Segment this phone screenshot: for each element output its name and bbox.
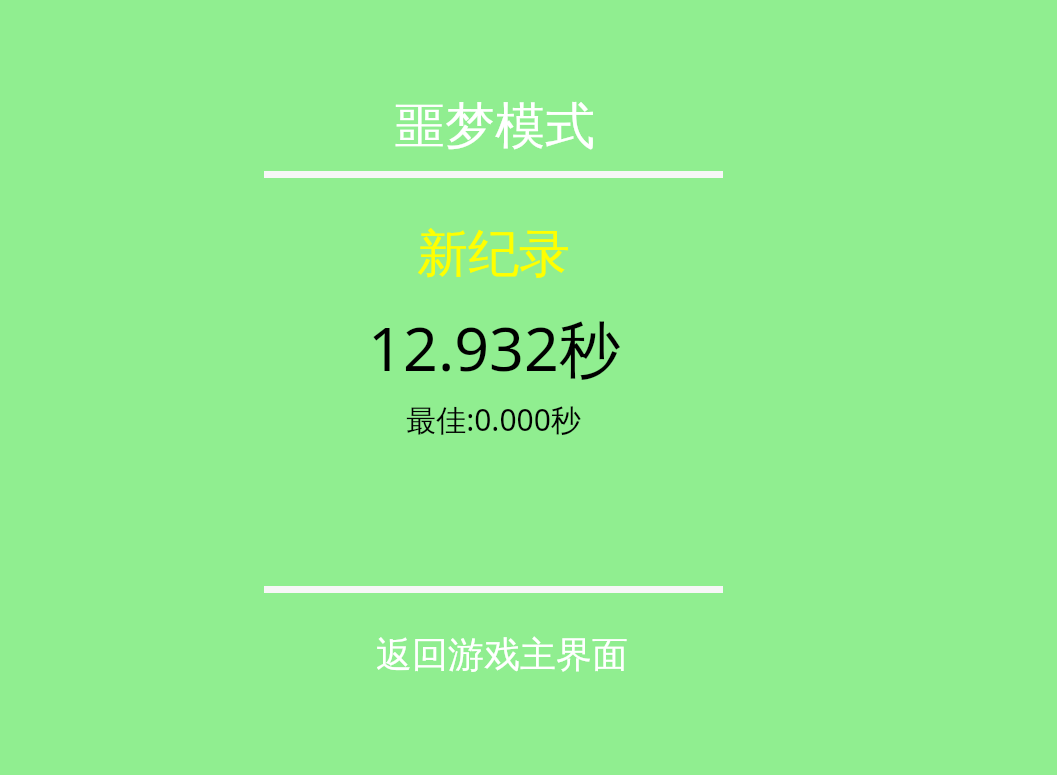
button[interactable]: 返回游戏主界面 — [264, 610, 723, 694]
staticText: 噩梦模式 — [395, 95, 595, 158]
staticText: 返回游戏主界面 — [376, 632, 628, 677]
staticText: 新纪录 — [417, 222, 570, 286]
staticText: 12.932秒 — [368, 306, 620, 389]
staticText: 最佳:0.000秒 — [406, 399, 581, 440]
